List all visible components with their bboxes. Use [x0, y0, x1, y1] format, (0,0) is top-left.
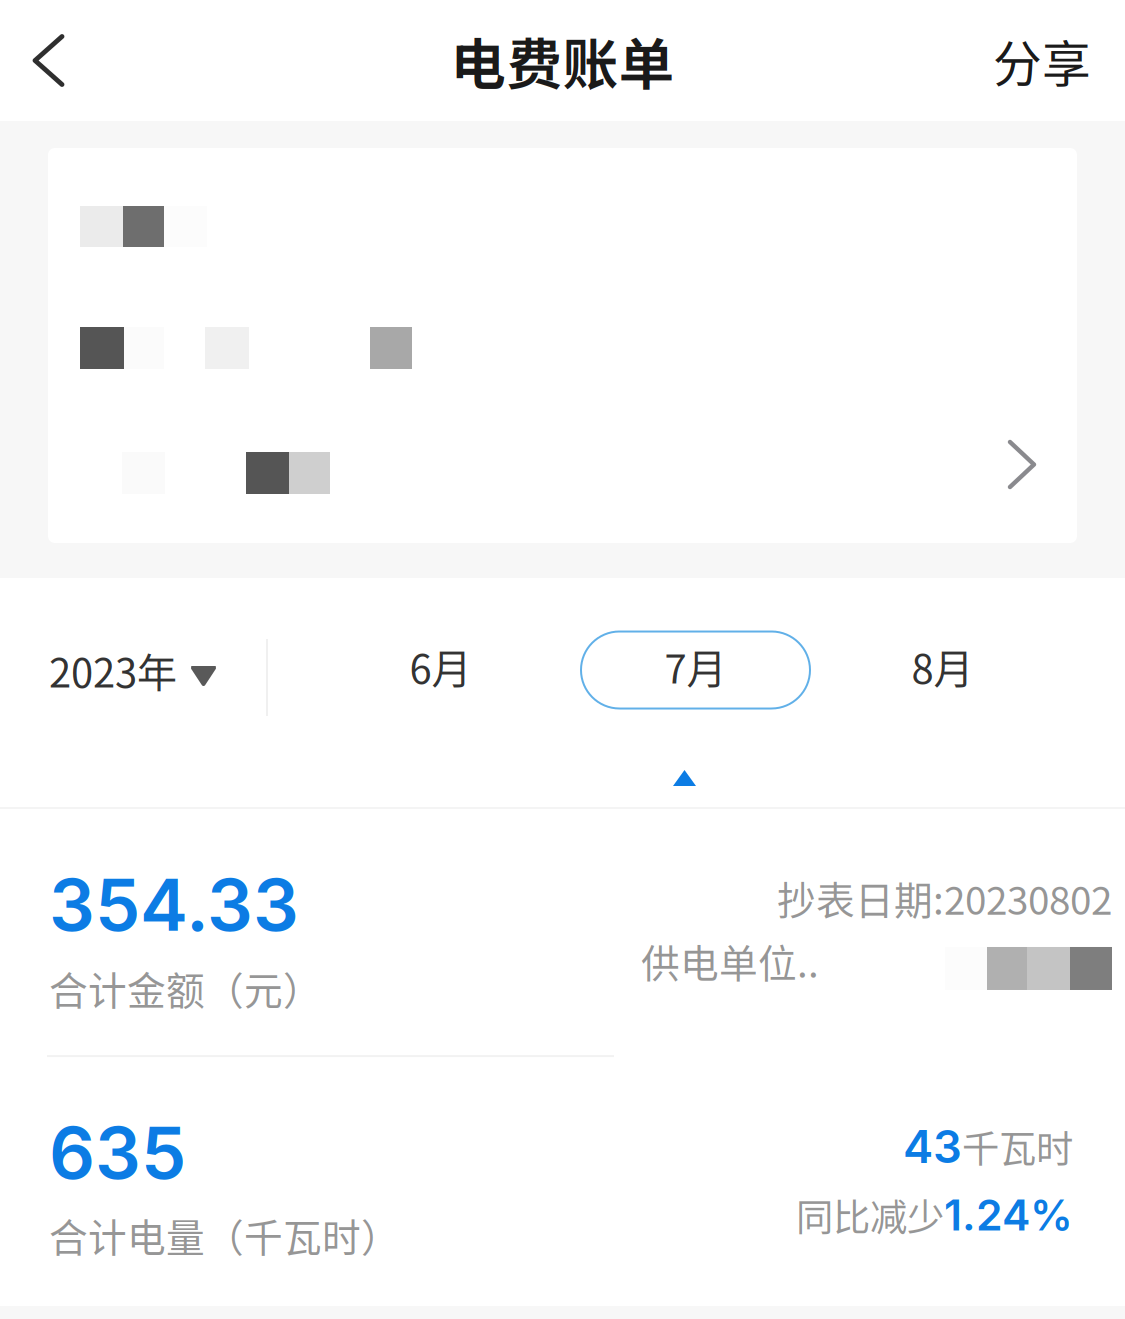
staticText: 分享 [993, 25, 1091, 96]
staticText: 2023年 [49, 641, 177, 699]
staticText: 635 [49, 1109, 186, 1196]
staticText: 合计金额（元） [49, 960, 322, 1016]
button[interactable]: Back [0, 0, 100, 121]
staticText: 43 [903, 1119, 962, 1174]
button[interactable]: 7月 [580, 630, 811, 709]
staticText: 同比减少 [796, 1188, 944, 1242]
staticText: 供电单位.. [641, 933, 819, 989]
staticText: 7月 [664, 637, 726, 695]
staticText: 电费账单 [450, 20, 674, 101]
button[interactable]: 2023年 [0, 578, 266, 762]
staticText: 合计电量（千瓦时） [49, 1207, 400, 1263]
staticText: 千瓦时 [962, 1119, 1073, 1174]
staticText: 抄表日期:20230802 [777, 870, 1112, 926]
staticText: 354.33 [49, 861, 299, 948]
button[interactable]: 8月 [854, 630, 1031, 709]
button[interactable]: 分享 [955, 0, 1125, 121]
staticText: 8月 [911, 637, 973, 695]
staticText: 1.24% [944, 1189, 1073, 1241]
button[interactable]: 6月 [325, 630, 556, 709]
button[interactable]: Account details [0, 121, 1125, 578]
staticText: 6月 [409, 637, 471, 695]
